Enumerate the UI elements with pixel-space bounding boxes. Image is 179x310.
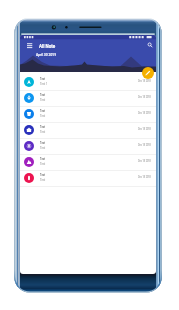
staticText: Test [40,146,46,150]
button[interactable]: Test [20,138,156,154]
staticText: Dec 18 2018 [138,111,152,114]
staticText: Test [40,173,45,177]
button[interactable]: Test [20,170,156,186]
staticText: April 30 2019 [36,53,57,57]
staticText: Test [40,162,46,166]
button[interactable]: Test [20,74,156,90]
staticText: Test [40,125,45,129]
staticText: Test [40,178,46,182]
button[interactable]: Search [146,41,155,50]
staticText: Test [40,130,46,134]
button[interactable]: Test [20,122,156,138]
staticText: Test [40,93,45,97]
staticText: Test [40,98,46,102]
button[interactable]: New note [142,67,154,79]
staticText: Dec 18 2018 [138,143,152,146]
staticText: Test [40,157,45,161]
staticText: Test 1 [40,82,48,86]
staticText: All Note [39,43,56,49]
staticText: Dec 18 2018 [138,127,152,130]
staticText: Dec 18 2018 [138,159,152,162]
staticText: Dec 18 2018 [138,175,152,178]
staticText: Test [40,141,45,145]
button[interactable]: Test [20,90,156,106]
button[interactable]: Open navigation menu [25,41,34,50]
staticText: Dec 18 2018 [138,95,152,98]
staticText: Test [40,109,45,113]
button[interactable]: Test [20,106,156,122]
staticText: Test [40,77,45,81]
button[interactable]: Test [20,154,156,170]
staticText: Test [40,114,46,118]
staticText: Dec 18 2018 [138,79,152,82]
